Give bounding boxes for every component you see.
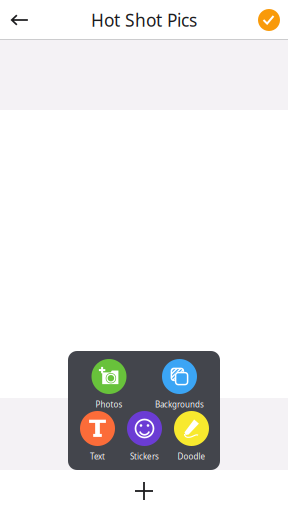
button[interactable]: Text [74, 411, 121, 463]
button[interactable]: Add [0, 470, 288, 512]
button[interactable]: Doodle [168, 411, 215, 463]
staticText: Hot Shot Pics [91, 8, 197, 31]
button[interactable]: Backgrounds [144, 359, 215, 411]
button[interactable]: Stickers [121, 411, 168, 463]
staticText: Photos [95, 399, 122, 410]
button[interactable]: Done [250, 0, 288, 39]
staticText: Text [90, 451, 105, 462]
button[interactable]: Photos [74, 359, 144, 411]
staticText: Doodle [177, 451, 205, 462]
staticText: Stickers [130, 451, 159, 462]
button[interactable]: Back [0, 0, 40, 39]
staticText: Backgrounds [155, 399, 204, 410]
